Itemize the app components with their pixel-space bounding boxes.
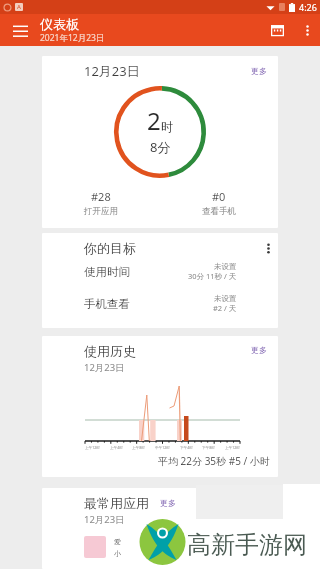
staticText: 小 bbox=[114, 549, 121, 558]
button[interactable]: 更多 bbox=[248, 343, 270, 357]
staticText: #28 bbox=[91, 189, 111, 204]
staticText: 上午12时 bbox=[85, 445, 100, 450]
staticText: 上午12时 bbox=[225, 445, 240, 450]
staticText: 打开应用 bbox=[84, 206, 118, 217]
staticText: 上午8时 bbox=[132, 445, 145, 450]
staticText: 2021年12月23日 bbox=[40, 32, 105, 44]
button[interactable]: 使用时间 bbox=[42, 262, 278, 281]
button[interactable]: Goals options bbox=[258, 238, 278, 258]
staticText: 手机查看 bbox=[84, 297, 130, 311]
staticText: 更多 bbox=[160, 498, 176, 508]
staticText: 12月23日 bbox=[84, 361, 125, 374]
staticText: 下午4时 bbox=[180, 445, 193, 450]
staticText: 使用历史 bbox=[84, 343, 136, 359]
staticText: 时 bbox=[161, 119, 173, 134]
button[interactable]: Navigation menu bbox=[0, 14, 40, 46]
staticText: 未设置 bbox=[214, 294, 237, 303]
staticText: #0 bbox=[212, 189, 226, 204]
staticText: 仪表板 bbox=[40, 16, 79, 32]
staticText: 12月23日 bbox=[84, 513, 125, 526]
button[interactable]: 手机查看 bbox=[42, 294, 278, 313]
staticText: 8分 bbox=[150, 138, 171, 156]
staticText: 4:26 bbox=[299, 1, 317, 13]
staticText: 更多 bbox=[251, 345, 267, 355]
staticText: A bbox=[17, 3, 21, 11]
button[interactable]: #28 bbox=[42, 189, 160, 217]
staticText: #2 / 天 bbox=[213, 303, 237, 313]
button[interactable]: More options bbox=[294, 14, 320, 46]
staticText: 12月23日 bbox=[84, 62, 140, 80]
staticText: 爱 bbox=[114, 537, 121, 546]
staticText: 2 bbox=[147, 104, 161, 137]
staticText: 上午4时 bbox=[110, 445, 123, 450]
staticText: 高新手游网 bbox=[187, 530, 307, 560]
staticText: 使用时间 bbox=[84, 265, 130, 279]
staticText: 中午12时 bbox=[155, 445, 170, 450]
staticText: 查看手机 bbox=[202, 206, 236, 217]
staticText: 平均 22分 35秒 #5 / 小时 bbox=[158, 454, 270, 468]
button[interactable]: 更多 bbox=[157, 496, 179, 510]
staticText: 更多 bbox=[251, 66, 267, 76]
button[interactable]: Calendar bbox=[260, 14, 294, 46]
staticText: 下午8时 bbox=[202, 445, 215, 450]
staticText: 你的目标 bbox=[84, 240, 136, 256]
button[interactable]: 更多 bbox=[248, 64, 270, 78]
staticText: 未设置 bbox=[214, 262, 237, 271]
button[interactable]: 爱 bbox=[84, 536, 278, 558]
button[interactable]: #0 bbox=[160, 189, 278, 217]
staticText: 30分 11秒 / 天 bbox=[188, 271, 237, 281]
staticText: 最常用应用 bbox=[84, 495, 149, 511]
